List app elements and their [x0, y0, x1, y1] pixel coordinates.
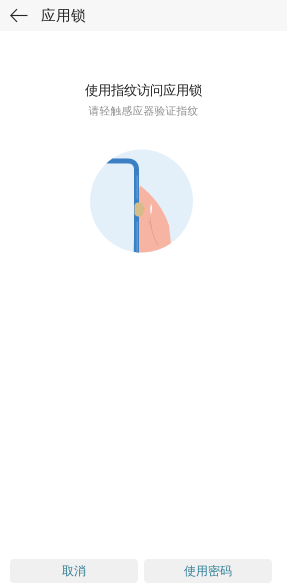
button[interactable]: 取消 — [10, 559, 138, 583]
staticText: 请轻触感应器验证指纹 — [88, 104, 198, 117]
staticText: 使用指纹访问应用锁 — [85, 82, 202, 98]
staticText: 使用密码 — [184, 564, 232, 578]
button[interactable]: 返回 — [0, 0, 86, 30]
button[interactable]: 使用密码 — [144, 559, 272, 583]
staticText: 应用锁 — [41, 6, 86, 24]
staticText: 取消 — [62, 564, 86, 578]
